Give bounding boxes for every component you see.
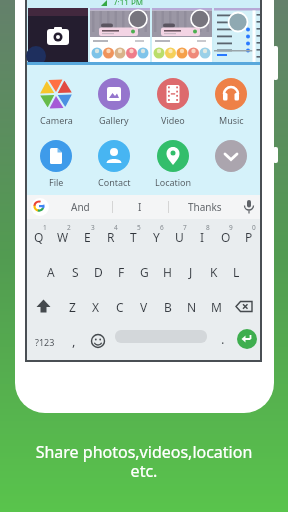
staticText: M (211, 299, 222, 315)
button[interactable] (237, 329, 257, 349)
staticText: O (221, 229, 231, 245)
button[interactable]: V (132, 289, 156, 324)
button[interactable]: D (87, 254, 110, 289)
button[interactable]: A (39, 254, 63, 289)
staticText: 8 (206, 223, 210, 232)
button[interactable]: Q (27, 219, 51, 254)
staticText: Share photos,videos,location etc. (0, 441, 288, 482)
staticText: U (175, 229, 184, 245)
button[interactable]: U (168, 219, 191, 254)
button[interactable]: M (204, 289, 228, 324)
staticText: File (49, 176, 64, 188)
button[interactable]: . (221, 330, 225, 348)
button[interactable] (27, 195, 260, 219)
staticText: D (94, 264, 103, 280)
button[interactable] (115, 330, 207, 343)
staticText: G (140, 264, 149, 280)
staticText: Z (69, 299, 76, 315)
staticText: K (210, 264, 218, 280)
staticText: T (130, 229, 137, 245)
staticText: J (189, 264, 193, 280)
staticText: 1 (43, 223, 47, 232)
staticText: Location (155, 176, 192, 188)
button[interactable]: Location (144, 140, 202, 188)
button[interactable]: B (156, 289, 180, 324)
button[interactable]: Contact (85, 140, 143, 188)
staticText: Q (34, 229, 44, 245)
staticText: I (200, 229, 205, 245)
staticText: Contact (98, 176, 131, 188)
button[interactable]: O (214, 219, 237, 254)
button[interactable] (91, 334, 105, 348)
button[interactable] (228, 289, 260, 324)
staticText: Y (153, 229, 160, 245)
staticText: B (164, 299, 172, 315)
button[interactable]: And (71, 200, 90, 214)
button[interactable]: I (138, 200, 142, 214)
staticText: Gallery (99, 114, 129, 126)
staticText: Camera (40, 114, 73, 126)
staticText: F (118, 264, 125, 280)
button[interactable]: R (99, 219, 122, 254)
staticText: Music (219, 114, 244, 126)
staticText: P (245, 229, 253, 245)
button[interactable]: Z (60, 289, 84, 324)
button[interactable]: F (110, 254, 133, 289)
button[interactable]: S (63, 254, 87, 289)
button[interactable]: N (180, 289, 204, 324)
button[interactable]: Camera (27, 78, 85, 126)
staticText: 9 (229, 223, 233, 232)
button[interactable]: L (225, 254, 248, 289)
staticText: W (57, 229, 69, 245)
button[interactable]: G (133, 254, 156, 289)
staticText: 6 (160, 223, 164, 232)
staticText: 7:11 PM (113, 0, 144, 5)
staticText: 0 (252, 223, 256, 232)
button[interactable]: C (108, 289, 132, 324)
button[interactable]: Music (202, 78, 260, 126)
button[interactable]: Video (144, 78, 202, 126)
button[interactable]: File (27, 140, 85, 188)
button[interactable]: J (179, 254, 202, 289)
button[interactable]: Gallery (85, 78, 143, 126)
button[interactable] (31, 198, 49, 216)
staticText: E (84, 229, 91, 245)
staticText: V (140, 299, 148, 315)
staticText: 3 (91, 223, 95, 232)
button[interactable]: X (84, 289, 108, 324)
button[interactable]: E (75, 219, 99, 254)
button[interactable]: K (202, 254, 225, 289)
button[interactable] (202, 140, 260, 188)
staticText: R (107, 229, 115, 245)
staticText: 5 (137, 223, 141, 232)
button[interactable]: W (51, 219, 75, 254)
staticText: N (187, 299, 197, 315)
button[interactable]: T (122, 219, 145, 254)
button[interactable]: H (156, 254, 179, 289)
button[interactable] (27, 289, 60, 324)
staticText: 7 (183, 223, 187, 232)
staticText: C (116, 299, 124, 315)
staticText: H (163, 264, 172, 280)
staticText: S (72, 264, 79, 280)
button[interactable]: Y (145, 219, 168, 254)
staticText: L (233, 264, 240, 280)
button[interactable]: I (191, 219, 214, 254)
staticText: Video (161, 114, 185, 126)
button[interactable]: P (237, 219, 260, 254)
staticText: A (47, 264, 55, 280)
button[interactable]: , (72, 332, 76, 350)
button[interactable]: ?123 (35, 336, 55, 348)
staticText: 4 (114, 223, 118, 232)
staticText: 2 (67, 223, 71, 232)
button[interactable]: Thanks (188, 200, 222, 214)
staticText: X (92, 299, 100, 315)
